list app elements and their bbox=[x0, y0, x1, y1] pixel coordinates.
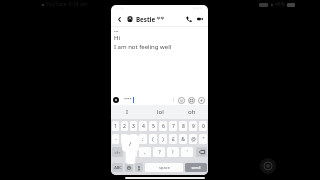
button[interactable]: Recording controls bbox=[260, 158, 276, 174]
staticText: 1 bbox=[114, 123, 117, 130]
button[interactable]: ) bbox=[159, 134, 167, 144]
button[interactable]: Back bbox=[114, 14, 124, 24]
button[interactable]: 1 bbox=[112, 121, 119, 131]
button[interactable]: send bbox=[185, 163, 207, 172]
staticText: 9 bbox=[192, 123, 195, 130]
button[interactable]: £ bbox=[169, 134, 177, 144]
button[interactable]: Voice input bbox=[135, 163, 143, 172]
staticText: " bbox=[202, 136, 205, 143]
button[interactable]: oh bbox=[176, 105, 208, 119]
button[interactable]: 9 bbox=[189, 121, 197, 131]
button[interactable]: - bbox=[112, 134, 119, 144]
staticText: @ bbox=[191, 136, 196, 143]
button[interactable]: ABC bbox=[112, 163, 123, 172]
button[interactable]: Video call bbox=[194, 13, 205, 24]
button[interactable]: Backspace bbox=[196, 147, 207, 157]
button[interactable]: space bbox=[145, 163, 183, 172]
button[interactable]: Hi bbox=[114, 34, 120, 42]
staticText: 6 bbox=[162, 123, 165, 130]
staticText: ! bbox=[172, 149, 174, 156]
button[interactable]: Gallery bbox=[187, 96, 195, 104]
staticText: ; bbox=[142, 136, 144, 143]
staticText: 8 bbox=[182, 123, 185, 130]
button[interactable]: 7 bbox=[169, 121, 177, 131]
button[interactable]: 6 bbox=[159, 121, 167, 131]
button[interactable]: 8 bbox=[179, 121, 187, 131]
staticText: , bbox=[144, 149, 146, 156]
staticText: lol bbox=[157, 108, 164, 116]
staticText: 2 bbox=[123, 123, 126, 130]
button[interactable]: lol bbox=[144, 105, 176, 119]
staticText: ? bbox=[158, 149, 161, 156]
button[interactable]: ( bbox=[149, 134, 157, 144]
button[interactable]: I am not feeling well bbox=[114, 43, 172, 51]
button[interactable]: , bbox=[139, 147, 151, 157]
button[interactable]: Add attachment bbox=[113, 97, 119, 103]
button[interactable]: 4 bbox=[139, 121, 147, 131]
button[interactable]: More options bbox=[197, 96, 205, 104]
button[interactable]: & bbox=[179, 134, 187, 144]
staticText: 46% bbox=[275, 1, 285, 8]
staticText: ' bbox=[186, 149, 188, 156]
button[interactable]: " bbox=[199, 134, 207, 144]
staticText: ) bbox=[162, 136, 164, 143]
button[interactable]: ? bbox=[153, 147, 165, 157]
button[interactable]: ' bbox=[181, 147, 193, 157]
staticText: - bbox=[115, 136, 117, 143]
staticText: I bbox=[126, 108, 129, 116]
staticText: £ bbox=[172, 136, 175, 143]
staticText: oh bbox=[188, 108, 196, 116]
staticText: 0 bbox=[202, 123, 205, 130]
button[interactable]: ; bbox=[139, 134, 147, 144]
button[interactable]: 3 bbox=[130, 121, 137, 131]
staticText: Bestie bbox=[136, 15, 156, 23]
staticText: 9:18 bbox=[116, 6, 124, 11]
staticText: =\< bbox=[114, 150, 121, 155]
button[interactable]: =\< bbox=[112, 147, 123, 157]
staticText: ● ● ● bbox=[193, 6, 203, 10]
staticText: ( bbox=[152, 136, 154, 143]
staticText: 3 bbox=[132, 123, 135, 130]
staticText: •••• bbox=[124, 96, 132, 103]
staticText: 4 bbox=[142, 123, 145, 130]
button[interactable]: @ bbox=[189, 134, 197, 144]
staticText: YouTube 9:18 am bbox=[46, 1, 88, 8]
staticText: ABC bbox=[114, 165, 122, 170]
staticText: 7 bbox=[172, 123, 175, 130]
button[interactable]: 2 bbox=[121, 121, 128, 131]
staticText: / bbox=[129, 140, 132, 148]
staticText: 5 bbox=[152, 123, 155, 130]
button[interactable]: ! bbox=[167, 147, 179, 157]
staticText: space bbox=[159, 165, 170, 170]
button[interactable]: / bbox=[121, 134, 128, 144]
staticText: ••• bbox=[114, 29, 119, 34]
staticText: send bbox=[191, 165, 201, 170]
button[interactable]: : bbox=[130, 134, 137, 144]
button[interactable]: 5 bbox=[149, 121, 157, 131]
button[interactable]: Voice call bbox=[183, 13, 194, 24]
button[interactable]: Emoji bbox=[125, 163, 133, 172]
staticText: & bbox=[181, 136, 185, 143]
button[interactable]: I bbox=[111, 105, 144, 119]
button[interactable]: Stickers bbox=[177, 96, 185, 104]
button[interactable]: 0 bbox=[199, 121, 207, 131]
